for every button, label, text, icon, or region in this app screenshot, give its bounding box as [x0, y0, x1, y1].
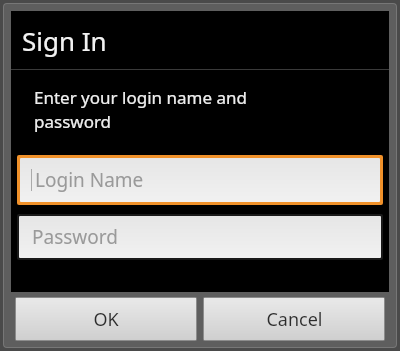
button[interactable]: Password [19, 216, 381, 258]
staticText: Sign In [22, 23, 107, 58]
button[interactable]: OK [16, 298, 196, 340]
button[interactable]: Cancel [204, 298, 384, 340]
staticText: Cancel [266, 307, 323, 332]
staticText: Password [32, 224, 118, 250]
staticText: OK [93, 307, 119, 332]
staticText: Enter your login name and password [34, 86, 247, 133]
button[interactable]: Login Name [20, 158, 380, 202]
staticText: Login Name [35, 167, 144, 193]
